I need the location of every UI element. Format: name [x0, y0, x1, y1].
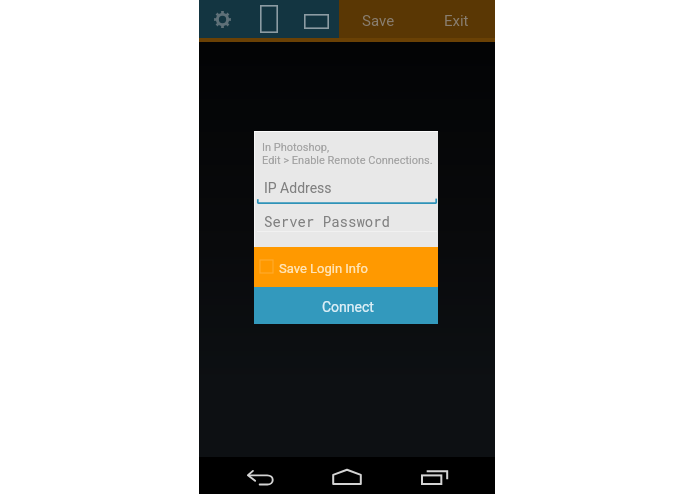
- button[interactable]: Home: [314, 457, 380, 494]
- staticText: In Photoshop,: [262, 141, 330, 154]
- staticText: Save: [362, 12, 395, 30]
- button[interactable]: Back: [228, 457, 294, 494]
- staticText: IP Address: [264, 180, 332, 196]
- staticText: Server Password: [264, 212, 391, 230]
- button[interactable]: Save: [339, 0, 417, 38]
- staticText: Connect: [322, 299, 374, 315]
- button[interactable]: Save Login Info: [254, 247, 438, 287]
- button[interactable]: Portrait orientation: [243, 0, 291, 38]
- staticText: Edit > Enable Remote Connections.: [262, 154, 433, 167]
- button[interactable]: Recent apps: [400, 457, 466, 494]
- button[interactable]: Settings: [199, 0, 243, 38]
- staticText: Exit: [444, 12, 469, 30]
- button[interactable]: Exit: [417, 0, 495, 38]
- button[interactable]: Connect: [254, 287, 438, 324]
- button[interactable]: Landscape orientation: [291, 0, 339, 38]
- staticText: Save Login Info: [279, 261, 368, 276]
